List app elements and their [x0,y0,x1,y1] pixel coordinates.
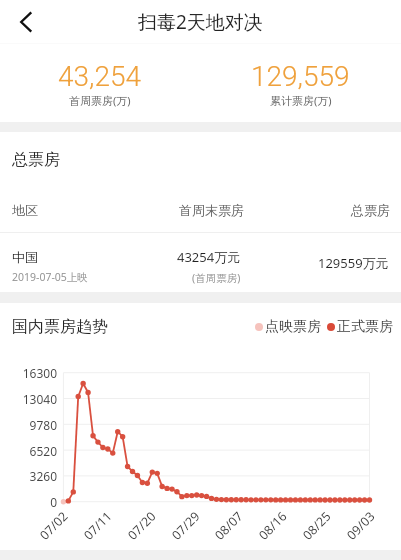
staticText: 43254万元 [177,248,241,266]
staticText: 扫毒2天地对决 [138,9,263,35]
staticText: 13040 [0,391,57,407]
staticText: 129559万元 [318,254,389,272]
staticText: 点映票房 [265,318,321,336]
staticText: 08/16 [255,507,291,544]
staticText: 129,559 [251,60,350,93]
staticText: 国内票房趋势 [12,317,108,337]
staticText: 08/25 [299,507,335,544]
staticText: 地区 [12,202,172,218]
staticText: 07/29 [168,507,204,544]
staticText: 3260 [0,468,57,484]
staticText: 正式票房 [337,318,393,336]
staticText: 中国 [12,249,38,265]
staticText: 07/11 [80,507,116,544]
staticText: 16300 [0,365,57,381]
staticText: 总票房 [244,202,390,218]
staticText: 总票房 [12,150,60,170]
staticText: 07/20 [124,507,160,544]
staticText: 首周票房(万) [69,93,131,108]
button[interactable]: Back [14,10,38,34]
staticText: 首周末票房 [172,202,244,218]
staticText: 累计票房(万) [270,93,332,108]
button[interactable]: 中国 [0,233,401,292]
staticText: 07/02 [36,507,72,544]
staticText: 0 [0,494,57,510]
staticText: 09/03 [343,507,379,544]
button[interactable]: 43,254 [0,44,200,122]
staticText: 6520 [0,443,57,459]
staticText: 08/07 [211,507,247,544]
staticText: 9780 [0,417,57,433]
button[interactable]: 129,559 [200,44,401,122]
staticText: (首周票房) [192,271,241,285]
staticText: 2019-07-05上映 [12,270,88,284]
staticText: 43,254 [58,60,142,93]
